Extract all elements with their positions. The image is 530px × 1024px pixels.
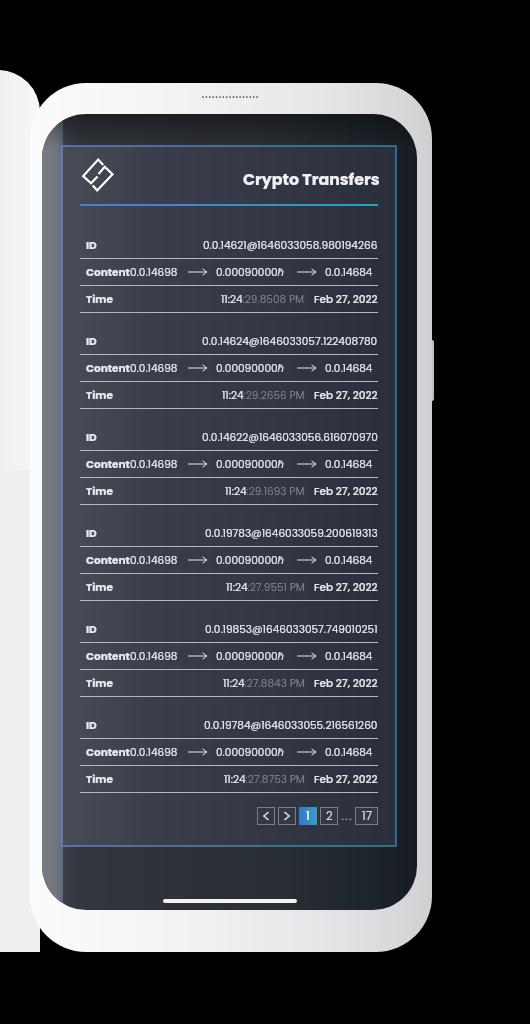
staticText: 11:24:27.8753 PM xyxy=(224,772,305,787)
staticText: 0.0.14698 xyxy=(130,745,178,760)
staticText: 0.0.14698 xyxy=(130,649,178,664)
staticText: Time xyxy=(86,292,113,307)
staticText: 0.00090000ℏ xyxy=(216,457,285,472)
staticText: Feb 27, 2022 xyxy=(314,292,378,307)
staticText: ID xyxy=(86,622,97,637)
staticText: 0.00090000ℏ xyxy=(216,265,285,280)
staticText: Feb 27, 2022 xyxy=(314,772,378,787)
staticText: 0.00090000ℏ xyxy=(216,553,285,568)
button[interactable]: 2 xyxy=(321,808,337,824)
staticText: 0.0.14684 xyxy=(325,649,373,664)
staticText: 0.00090000ℏ xyxy=(216,745,285,760)
staticText: 11:24:29.8508 PM xyxy=(221,292,305,307)
staticText: 0.0.19783@1646033059.200619313 xyxy=(205,526,378,541)
staticText: 0.0.14684 xyxy=(325,361,373,376)
staticText: Content xyxy=(86,265,130,280)
button[interactable]: 17 xyxy=(356,808,377,824)
button[interactable]: Time xyxy=(80,574,378,600)
staticText: 0.0.14698 xyxy=(130,457,178,472)
button[interactable]: Content xyxy=(80,451,378,477)
staticText: 0.0.14684 xyxy=(325,265,373,280)
staticText: 11:24:29.1693 PM xyxy=(225,484,305,499)
staticText: Feb 27, 2022 xyxy=(314,484,378,499)
button[interactable]: Content xyxy=(80,643,378,669)
staticText: Feb 27, 2022 xyxy=(314,388,378,403)
staticText: 0.0.14684 xyxy=(325,745,373,760)
button[interactable]: Time xyxy=(80,382,378,408)
staticText: Feb 27, 2022 xyxy=(314,676,378,691)
button[interactable]: ID xyxy=(80,232,378,258)
staticText: Content xyxy=(86,649,130,664)
staticText: Content xyxy=(86,457,130,472)
button[interactable]: Time xyxy=(80,766,378,792)
staticText: Content xyxy=(86,745,130,760)
staticText: Feb 27, 2022 xyxy=(314,580,378,595)
button[interactable]: ID xyxy=(80,520,378,546)
staticText: Time xyxy=(86,772,113,787)
staticText: 0.0.19784@1646033055.216561260 xyxy=(204,718,378,733)
staticText: 0.0.14684 xyxy=(325,553,373,568)
button[interactable]: ID xyxy=(80,328,378,354)
staticText: ID xyxy=(86,238,97,253)
staticText: 11:24:29.2656 PM xyxy=(222,388,305,403)
button[interactable]: Content xyxy=(80,259,378,285)
staticText: 0.0.14624@1646033057.122408780 xyxy=(202,334,378,349)
button[interactable]: Content xyxy=(80,739,378,765)
staticText: ID xyxy=(86,526,97,541)
staticText: ID xyxy=(86,430,97,445)
button[interactable]: ID xyxy=(80,424,378,450)
staticText: 0.0.14622@1646033056.616070970 xyxy=(202,430,378,445)
staticText: 0.00090000ℏ xyxy=(216,361,285,376)
staticText: Content xyxy=(86,553,130,568)
button[interactable]: Content xyxy=(80,355,378,381)
staticText: Time xyxy=(86,580,113,595)
button[interactable]: Previous page xyxy=(258,808,274,824)
staticText: 0.00090000ℏ xyxy=(216,649,285,664)
staticText: 17 xyxy=(362,808,372,824)
other: App logo xyxy=(81,156,119,194)
staticText: 11:24:27.9551 PM xyxy=(226,580,305,595)
staticText: Time xyxy=(86,484,113,499)
staticText: ID xyxy=(86,334,97,349)
button[interactable]: ID xyxy=(80,712,378,738)
staticText: 0.0.14698 xyxy=(130,361,178,376)
button[interactable]: ID xyxy=(80,616,378,642)
button[interactable]: Time xyxy=(80,286,378,312)
button[interactable]: Content xyxy=(80,547,378,573)
staticText: Content xyxy=(86,361,130,376)
staticText: 0.0.14698 xyxy=(130,553,178,568)
staticText: 0.0.14698 xyxy=(130,265,178,280)
button[interactable]: 1 xyxy=(299,807,317,825)
staticText: Crypto Transfers xyxy=(243,168,380,190)
staticText: 0.0.19853@1646033057.749010251 xyxy=(205,622,378,637)
staticText: 0.0.14684 xyxy=(325,457,373,472)
staticText: Time xyxy=(86,676,113,691)
staticText: 0.0.14621@1646033058.980194266 xyxy=(203,238,378,253)
button[interactable]: Time xyxy=(80,478,378,504)
button[interactable]: Next page xyxy=(279,808,295,824)
button[interactable]: Time xyxy=(80,670,378,696)
staticText: 1 xyxy=(306,808,310,824)
staticText: Time xyxy=(86,388,113,403)
staticText: ID xyxy=(86,718,97,733)
staticText: 11:24:27.8843 PM xyxy=(223,676,305,691)
staticText: 2 xyxy=(326,808,333,824)
